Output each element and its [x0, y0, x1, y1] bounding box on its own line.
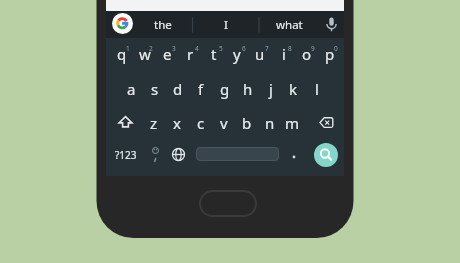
staticText: k [289, 79, 298, 99]
button[interactable]: h [236, 77, 259, 101]
staticText: 1 [126, 44, 130, 53]
button[interactable]: q [110, 42, 133, 66]
button[interactable]: g [213, 77, 236, 101]
button[interactable]: a [120, 77, 143, 101]
staticText: I [224, 17, 228, 33]
staticText: w [139, 44, 151, 64]
button[interactable]: l [305, 77, 328, 101]
button[interactable]: e [156, 42, 179, 66]
button[interactable]: p [318, 42, 341, 66]
button[interactable]: y [225, 42, 248, 66]
button[interactable] [199, 190, 257, 217]
staticText: m [285, 113, 300, 133]
button[interactable]: t [202, 42, 225, 66]
button[interactable]: i [272, 42, 295, 66]
staticText: a [127, 79, 136, 99]
staticText: what [276, 17, 303, 33]
staticText: s [151, 79, 159, 99]
button[interactable] [196, 147, 279, 161]
button[interactable]: u [248, 42, 271, 66]
button[interactable]: k [282, 77, 305, 101]
staticText: c [197, 113, 205, 133]
staticText: 8 [288, 44, 292, 53]
staticText: l [315, 79, 319, 99]
staticText: g [220, 79, 230, 99]
staticText: 7 [265, 44, 269, 53]
staticText: p [325, 44, 335, 64]
staticText: z [150, 113, 158, 133]
staticText: d [173, 79, 183, 99]
staticText: 6 [242, 44, 246, 53]
staticText: the [154, 17, 172, 33]
button[interactable]: j [259, 77, 282, 101]
button[interactable]: v [212, 111, 235, 135]
button[interactable]: f [189, 77, 212, 101]
staticText: 4 [195, 44, 199, 53]
staticText: n [265, 113, 275, 133]
button[interactable]: x [165, 111, 188, 135]
button[interactable]: d [166, 77, 189, 101]
button[interactable]: m [281, 111, 304, 135]
button[interactable]: z [142, 111, 165, 135]
staticText: x [173, 113, 181, 133]
staticText: j [269, 79, 273, 99]
staticText: h [243, 79, 253, 99]
button[interactable]: r [179, 42, 202, 66]
button[interactable]: n [258, 111, 281, 135]
staticText: t [211, 44, 217, 64]
button[interactable] [314, 143, 338, 167]
staticText: o [302, 44, 312, 64]
staticText: f [198, 79, 204, 99]
staticText: v [220, 113, 228, 133]
staticText: 0 [334, 44, 338, 53]
button[interactable]: b [235, 111, 258, 135]
staticText: e [163, 44, 172, 64]
staticText: 9 [311, 44, 315, 53]
staticText: 5 [219, 44, 223, 53]
button[interactable] [114, 111, 137, 134]
staticText: 2 [149, 44, 153, 53]
button[interactable] [315, 111, 338, 134]
button[interactable]: s [143, 77, 166, 101]
button[interactable]: o [295, 42, 318, 66]
staticText: i [282, 44, 286, 64]
staticText: ?123 [115, 148, 137, 162]
staticText: r [187, 44, 194, 64]
button[interactable]: w [133, 42, 156, 66]
button[interactable] [112, 13, 133, 34]
staticText: q [117, 44, 127, 64]
staticText: 3 [172, 44, 176, 53]
staticText: u [255, 44, 265, 64]
staticText: b [242, 113, 252, 133]
staticText: y [233, 44, 241, 64]
button[interactable]: c [189, 111, 212, 135]
